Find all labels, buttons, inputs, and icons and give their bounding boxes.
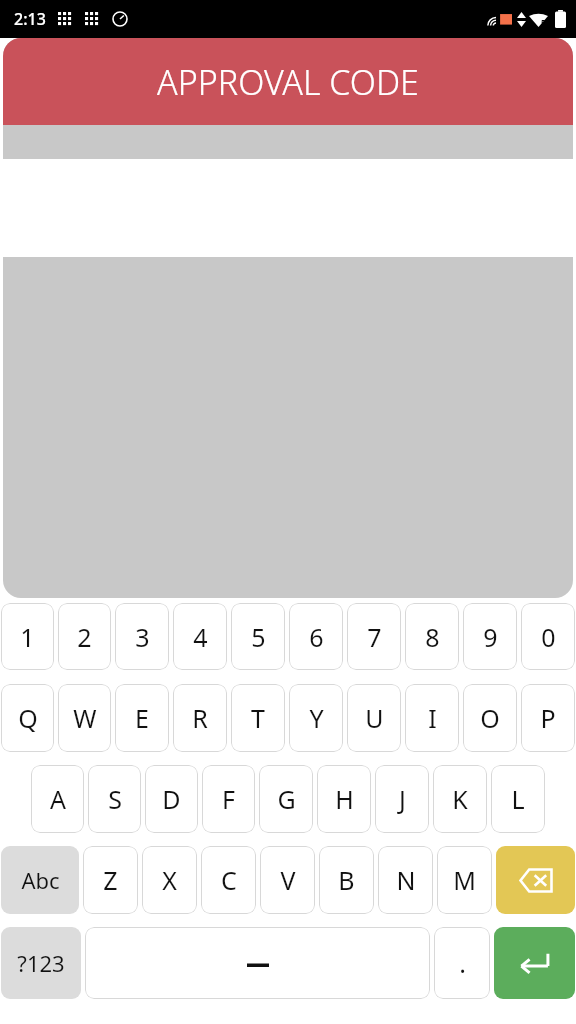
staticText: Y bbox=[309, 701, 324, 735]
staticText: S bbox=[108, 782, 122, 816]
staticText: . bbox=[459, 946, 466, 980]
staticText: APPROVAL CODE bbox=[157, 59, 419, 105]
staticText: 2 bbox=[77, 620, 92, 654]
staticText: O bbox=[480, 701, 500, 735]
staticText: 6 bbox=[309, 620, 324, 654]
button[interactable]: E bbox=[115, 684, 169, 752]
staticText: Q bbox=[18, 701, 38, 735]
staticText: 3 bbox=[135, 620, 150, 654]
staticText: U bbox=[365, 701, 384, 735]
staticText: 5 bbox=[251, 620, 266, 654]
button[interactable]: W bbox=[58, 684, 111, 752]
button[interactable]: B bbox=[319, 846, 374, 914]
staticText: W bbox=[73, 701, 97, 735]
staticText: L bbox=[511, 782, 525, 816]
staticText: I bbox=[428, 701, 437, 735]
button[interactable]: G bbox=[259, 765, 313, 833]
button[interactable]: K bbox=[433, 765, 487, 833]
button[interactable]: Abc bbox=[1, 846, 79, 914]
staticText: A bbox=[50, 782, 66, 816]
button[interactable]: 2 bbox=[58, 603, 111, 670]
staticText: Z bbox=[103, 863, 118, 897]
button[interactable]: F bbox=[202, 765, 255, 833]
staticText: E bbox=[135, 701, 149, 735]
button[interactable]: X bbox=[142, 846, 197, 914]
staticText: X bbox=[162, 863, 177, 897]
staticText: R bbox=[192, 701, 208, 735]
staticText: ?123 bbox=[17, 948, 65, 978]
button[interactable]: M bbox=[437, 846, 492, 914]
staticText: 9 bbox=[483, 620, 498, 654]
staticText: 8 bbox=[425, 620, 440, 654]
staticText: P bbox=[540, 701, 556, 735]
button[interactable]: 0 bbox=[521, 603, 575, 670]
button[interactable]: I bbox=[405, 684, 459, 752]
staticText: 2:13 bbox=[14, 8, 46, 30]
button[interactable]: 7 bbox=[347, 603, 401, 670]
button[interactable]: V bbox=[260, 846, 315, 914]
button[interactable]: J bbox=[375, 765, 429, 833]
staticText: V bbox=[280, 863, 296, 897]
button[interactable]: 8 bbox=[405, 603, 459, 670]
staticText: D bbox=[162, 782, 181, 816]
staticText: M bbox=[453, 863, 476, 897]
staticText: 1 bbox=[20, 620, 35, 654]
staticText: F bbox=[222, 782, 235, 816]
button[interactable]: 4 bbox=[173, 603, 227, 670]
button[interactable]: 6 bbox=[289, 603, 343, 670]
button[interactable]: Q bbox=[1, 684, 54, 752]
staticText: C bbox=[221, 863, 237, 897]
button[interactable]: H bbox=[317, 765, 371, 833]
staticText: T bbox=[251, 701, 265, 735]
button[interactable]: R bbox=[173, 684, 227, 752]
button[interactable]: . bbox=[434, 927, 490, 999]
button[interactable]: Y bbox=[289, 684, 343, 752]
button[interactable]: Z bbox=[83, 846, 138, 914]
staticText: K bbox=[452, 782, 468, 816]
button[interactable]: T bbox=[231, 684, 285, 752]
button[interactable]: C bbox=[201, 846, 256, 914]
button[interactable]: Space bbox=[85, 927, 430, 999]
staticText: 5 bbox=[541, 17, 546, 28]
staticText: G bbox=[277, 782, 296, 816]
staticText: N bbox=[396, 863, 416, 897]
button[interactable]: Enter bbox=[494, 927, 575, 999]
button[interactable]: Backspace bbox=[496, 846, 575, 914]
staticText: 7 bbox=[367, 620, 382, 654]
button[interactable]: 9 bbox=[463, 603, 517, 670]
staticText: J bbox=[399, 782, 406, 816]
button[interactable]: A bbox=[31, 765, 84, 833]
staticText: B bbox=[338, 863, 355, 897]
button[interactable]: 3 bbox=[115, 603, 169, 670]
button[interactable]: S bbox=[88, 765, 141, 833]
button[interactable]: N bbox=[378, 846, 433, 914]
button[interactable]: U bbox=[347, 684, 401, 752]
button[interactable]: O bbox=[463, 684, 517, 752]
button[interactable]: 5 bbox=[231, 603, 285, 670]
staticText: 0 bbox=[541, 620, 556, 654]
button[interactable]: ?123 bbox=[1, 927, 81, 999]
staticText: Abc bbox=[21, 865, 60, 895]
button[interactable]: 1 bbox=[1, 603, 54, 670]
staticText: H bbox=[335, 782, 354, 816]
button[interactable]: D bbox=[145, 765, 198, 833]
staticText: 4 bbox=[193, 620, 208, 654]
button[interactable]: P bbox=[521, 684, 575, 752]
button[interactable]: L bbox=[491, 765, 545, 833]
